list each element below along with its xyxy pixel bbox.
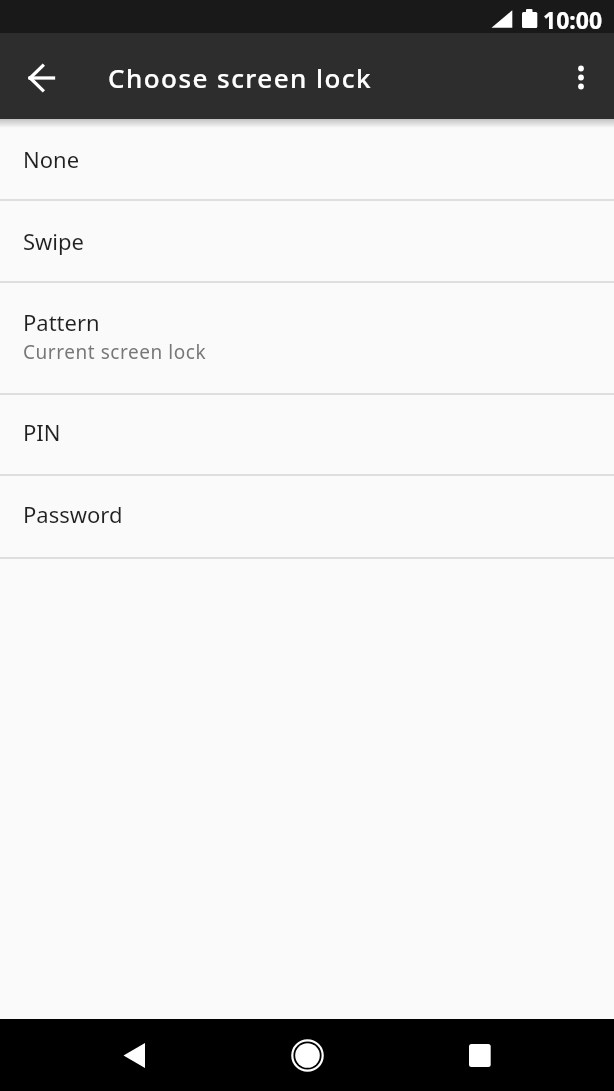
button[interactable]: PIN [0,395,614,474]
button[interactable] [452,1028,507,1083]
staticText: None [23,144,80,174]
staticText: Current screen lock [23,339,207,365]
button[interactable]: None [0,119,614,199]
button[interactable] [107,1028,162,1083]
button[interactable] [280,1028,335,1083]
staticText: PIN [23,417,61,447]
staticText: Password [23,499,123,529]
staticText: Swipe [23,226,84,256]
button[interactable]: Swipe [0,201,614,281]
staticText: Pattern [23,307,100,337]
staticText: 10:00 [543,4,603,33]
button[interactable]: Password [0,476,614,557]
button[interactable] [0,33,84,119]
button[interactable]: Pattern [0,283,614,393]
staticText: Choose screen lock [108,60,373,95]
button[interactable] [548,33,614,119]
